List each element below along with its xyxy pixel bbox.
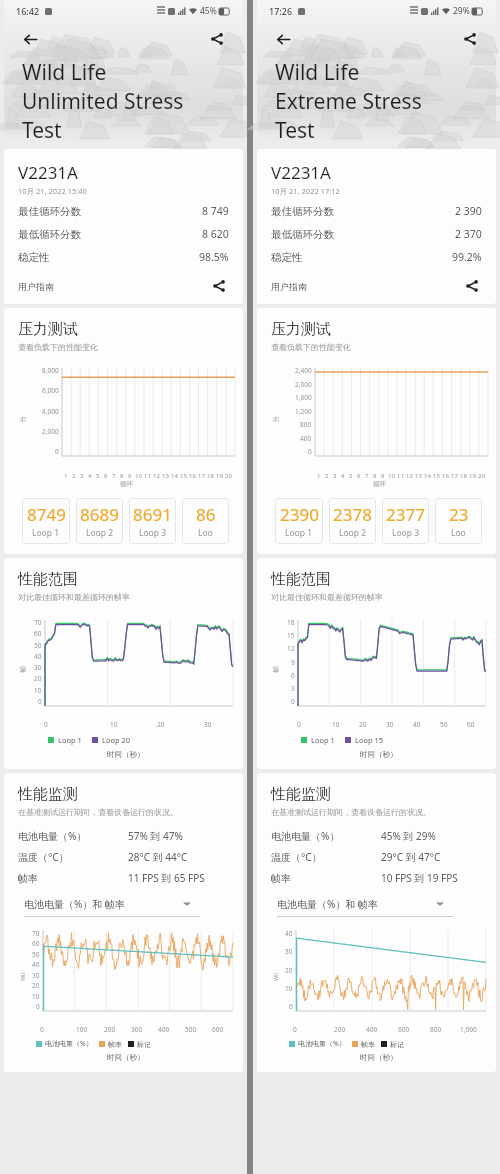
staticText: 15 (433, 472, 440, 480)
button[interactable]: Share (456, 25, 484, 53)
staticText: 600 (398, 1025, 410, 1034)
staticText: 99.2% (452, 250, 482, 264)
staticText: 20 (225, 472, 232, 480)
staticText: 14 (424, 472, 431, 480)
staticText: 98.5% (199, 250, 229, 264)
staticText: 17 (451, 472, 458, 480)
staticText: 10月 21, 2022 17:12 (271, 186, 340, 196)
staticText: 20 (285, 966, 293, 975)
staticText: 8 (373, 472, 377, 480)
staticText: 0 (44, 720, 48, 729)
staticText: 稳定性 (271, 251, 303, 264)
staticText: 0 (55, 447, 59, 456)
button[interactable]: 电池电量（%）和 帧率 (277, 897, 444, 911)
staticText: 性能监测 (18, 785, 78, 804)
staticText: 12 (406, 472, 413, 480)
staticText: 57% 到 47% (128, 829, 183, 843)
staticText: 5 (96, 472, 100, 480)
staticText: 9 (291, 658, 295, 667)
staticText: 60 (32, 939, 40, 948)
staticText: 23 (449, 503, 469, 526)
button[interactable]: Share result (209, 276, 229, 296)
staticText: 14 (171, 472, 178, 480)
button[interactable]: Back (16, 25, 44, 53)
button[interactable]: 23 (435, 498, 482, 544)
button[interactable]: 8689 (76, 498, 123, 544)
staticText: 6 (104, 472, 108, 480)
staticText: 8 749 (202, 204, 229, 218)
staticText: 16 (442, 472, 449, 480)
button[interactable]: 2390 (275, 498, 323, 544)
staticText: 最低循环分数 (271, 228, 334, 241)
staticText: 最佳循环分数 (271, 205, 334, 218)
staticText: 0 (291, 697, 295, 706)
staticText: Loop 2 (86, 527, 114, 539)
staticText: 17 (198, 472, 205, 480)
staticText: 8749 (27, 503, 66, 526)
staticText: 标记 (390, 1040, 404, 1049)
staticText: 200 (104, 1025, 116, 1034)
staticText: 6 (357, 472, 361, 480)
staticText: Unlimited Stress (22, 87, 184, 116)
staticText: 温度（°C） (271, 850, 322, 864)
staticText: Loop 3 (392, 527, 420, 539)
staticText: 600 (212, 1025, 224, 1034)
staticText: 12 (287, 644, 295, 653)
staticText: Loop 3 (139, 527, 167, 539)
button[interactable]: 8691 (129, 498, 176, 544)
staticText: 分数 (271, 413, 279, 422)
staticText: Loop 1 (285, 527, 313, 539)
staticText: 11 (397, 472, 404, 480)
staticText: 最佳循环分数 (18, 205, 81, 218)
staticText: 时间（秒） (107, 750, 145, 759)
button[interactable]: 2378 (329, 498, 376, 544)
staticText: 400 (158, 1025, 170, 1034)
staticText: 帧率 (271, 872, 291, 885)
button[interactable]: 用户指南 (18, 276, 229, 296)
staticText: 电池电量（%）和 帧率 (24, 897, 125, 911)
staticText: 50 (440, 720, 448, 729)
staticText: 循环 (120, 480, 133, 488)
staticText: 500 (185, 1025, 197, 1034)
staticText: 3 (80, 472, 84, 480)
button[interactable]: Share result (462, 276, 482, 296)
staticText: Loop 15 (355, 735, 384, 745)
staticText: 2390 (280, 503, 319, 526)
staticText: 时间（秒） (360, 1053, 398, 1062)
staticText: Wild Life Unlimited Stress Test (19, 972, 26, 981)
staticText: 2,000 (42, 427, 59, 436)
button[interactable]: Back (269, 25, 297, 53)
button[interactable]: 电池电量（%）和 帧率 (24, 897, 191, 911)
staticText: 7 (365, 472, 369, 480)
staticText: Wild Life (22, 58, 107, 87)
staticText: 300 (131, 1025, 143, 1034)
button[interactable]: 用户指南 (271, 276, 482, 296)
button[interactable]: 86 (182, 498, 229, 544)
staticText: 17:26 (269, 5, 293, 17)
staticText: 0 (293, 1025, 297, 1034)
button[interactable]: 2377 (382, 498, 429, 544)
staticText: 9 (381, 472, 385, 480)
staticText: 4 (341, 472, 345, 480)
staticText: 30 (386, 720, 394, 729)
staticText: 8689 (80, 503, 119, 526)
staticText: 8 (120, 472, 124, 480)
button[interactable]: 8749 (22, 498, 70, 544)
button[interactable]: Share (203, 25, 231, 53)
staticText: 70 (32, 929, 40, 938)
staticText: 循环 (373, 480, 386, 488)
staticText: 30 (32, 971, 40, 980)
staticText: 2377 (386, 503, 425, 526)
staticText: Test (275, 116, 315, 145)
staticText: 12 (153, 472, 160, 480)
staticText: 10 (332, 720, 340, 729)
staticText: 0 (308, 447, 312, 456)
staticText: 2 390 (455, 204, 482, 218)
staticText: 13 (162, 472, 169, 480)
staticText: 性能范围 (271, 570, 331, 589)
staticText: 1,000 (460, 1025, 477, 1034)
staticText: 11 (144, 472, 151, 480)
staticText: 40 (285, 929, 293, 938)
staticText: 0 (40, 1025, 44, 1034)
staticText: 1,600 (295, 393, 312, 402)
